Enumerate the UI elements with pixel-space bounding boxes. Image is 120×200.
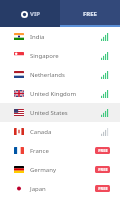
button[interactable]: Netherlands bbox=[0, 65, 120, 84]
button[interactable]: Singapore bbox=[0, 46, 120, 65]
other: Signal strength bbox=[101, 52, 109, 60]
other: Signal strength bbox=[101, 71, 109, 79]
other: Signal strength bbox=[101, 128, 109, 136]
staticText: FREE bbox=[83, 10, 97, 18]
button[interactable]: France bbox=[0, 141, 120, 160]
staticText: Germany bbox=[30, 166, 95, 174]
staticText: France bbox=[30, 147, 95, 155]
other: Signal strength bbox=[101, 109, 109, 117]
staticText: FREE bbox=[98, 148, 108, 153]
staticText: United States bbox=[30, 109, 101, 117]
button[interactable]: FREE bbox=[60, 0, 120, 27]
staticText: India bbox=[30, 33, 101, 41]
staticText: VIP bbox=[30, 10, 40, 18]
button[interactable]: United States bbox=[0, 103, 120, 122]
other: Signal strength bbox=[101, 90, 109, 98]
staticText: Japan bbox=[30, 185, 95, 193]
button[interactable]: Germany bbox=[0, 160, 120, 179]
staticText: FREE bbox=[98, 186, 108, 191]
other: Signal strength bbox=[101, 33, 109, 41]
button[interactable]: United Kingdom bbox=[0, 84, 120, 103]
staticText: FREE bbox=[98, 167, 108, 172]
button[interactable]: VIP bbox=[0, 0, 60, 27]
staticText: Canada bbox=[30, 128, 101, 136]
staticText: United Kingdom bbox=[30, 90, 101, 98]
button[interactable]: India bbox=[0, 27, 120, 46]
staticText: Singapore bbox=[30, 52, 101, 60]
staticText: Netherlands bbox=[30, 71, 101, 79]
button[interactable]: Japan bbox=[0, 179, 120, 198]
button[interactable]: Canada bbox=[0, 122, 120, 141]
